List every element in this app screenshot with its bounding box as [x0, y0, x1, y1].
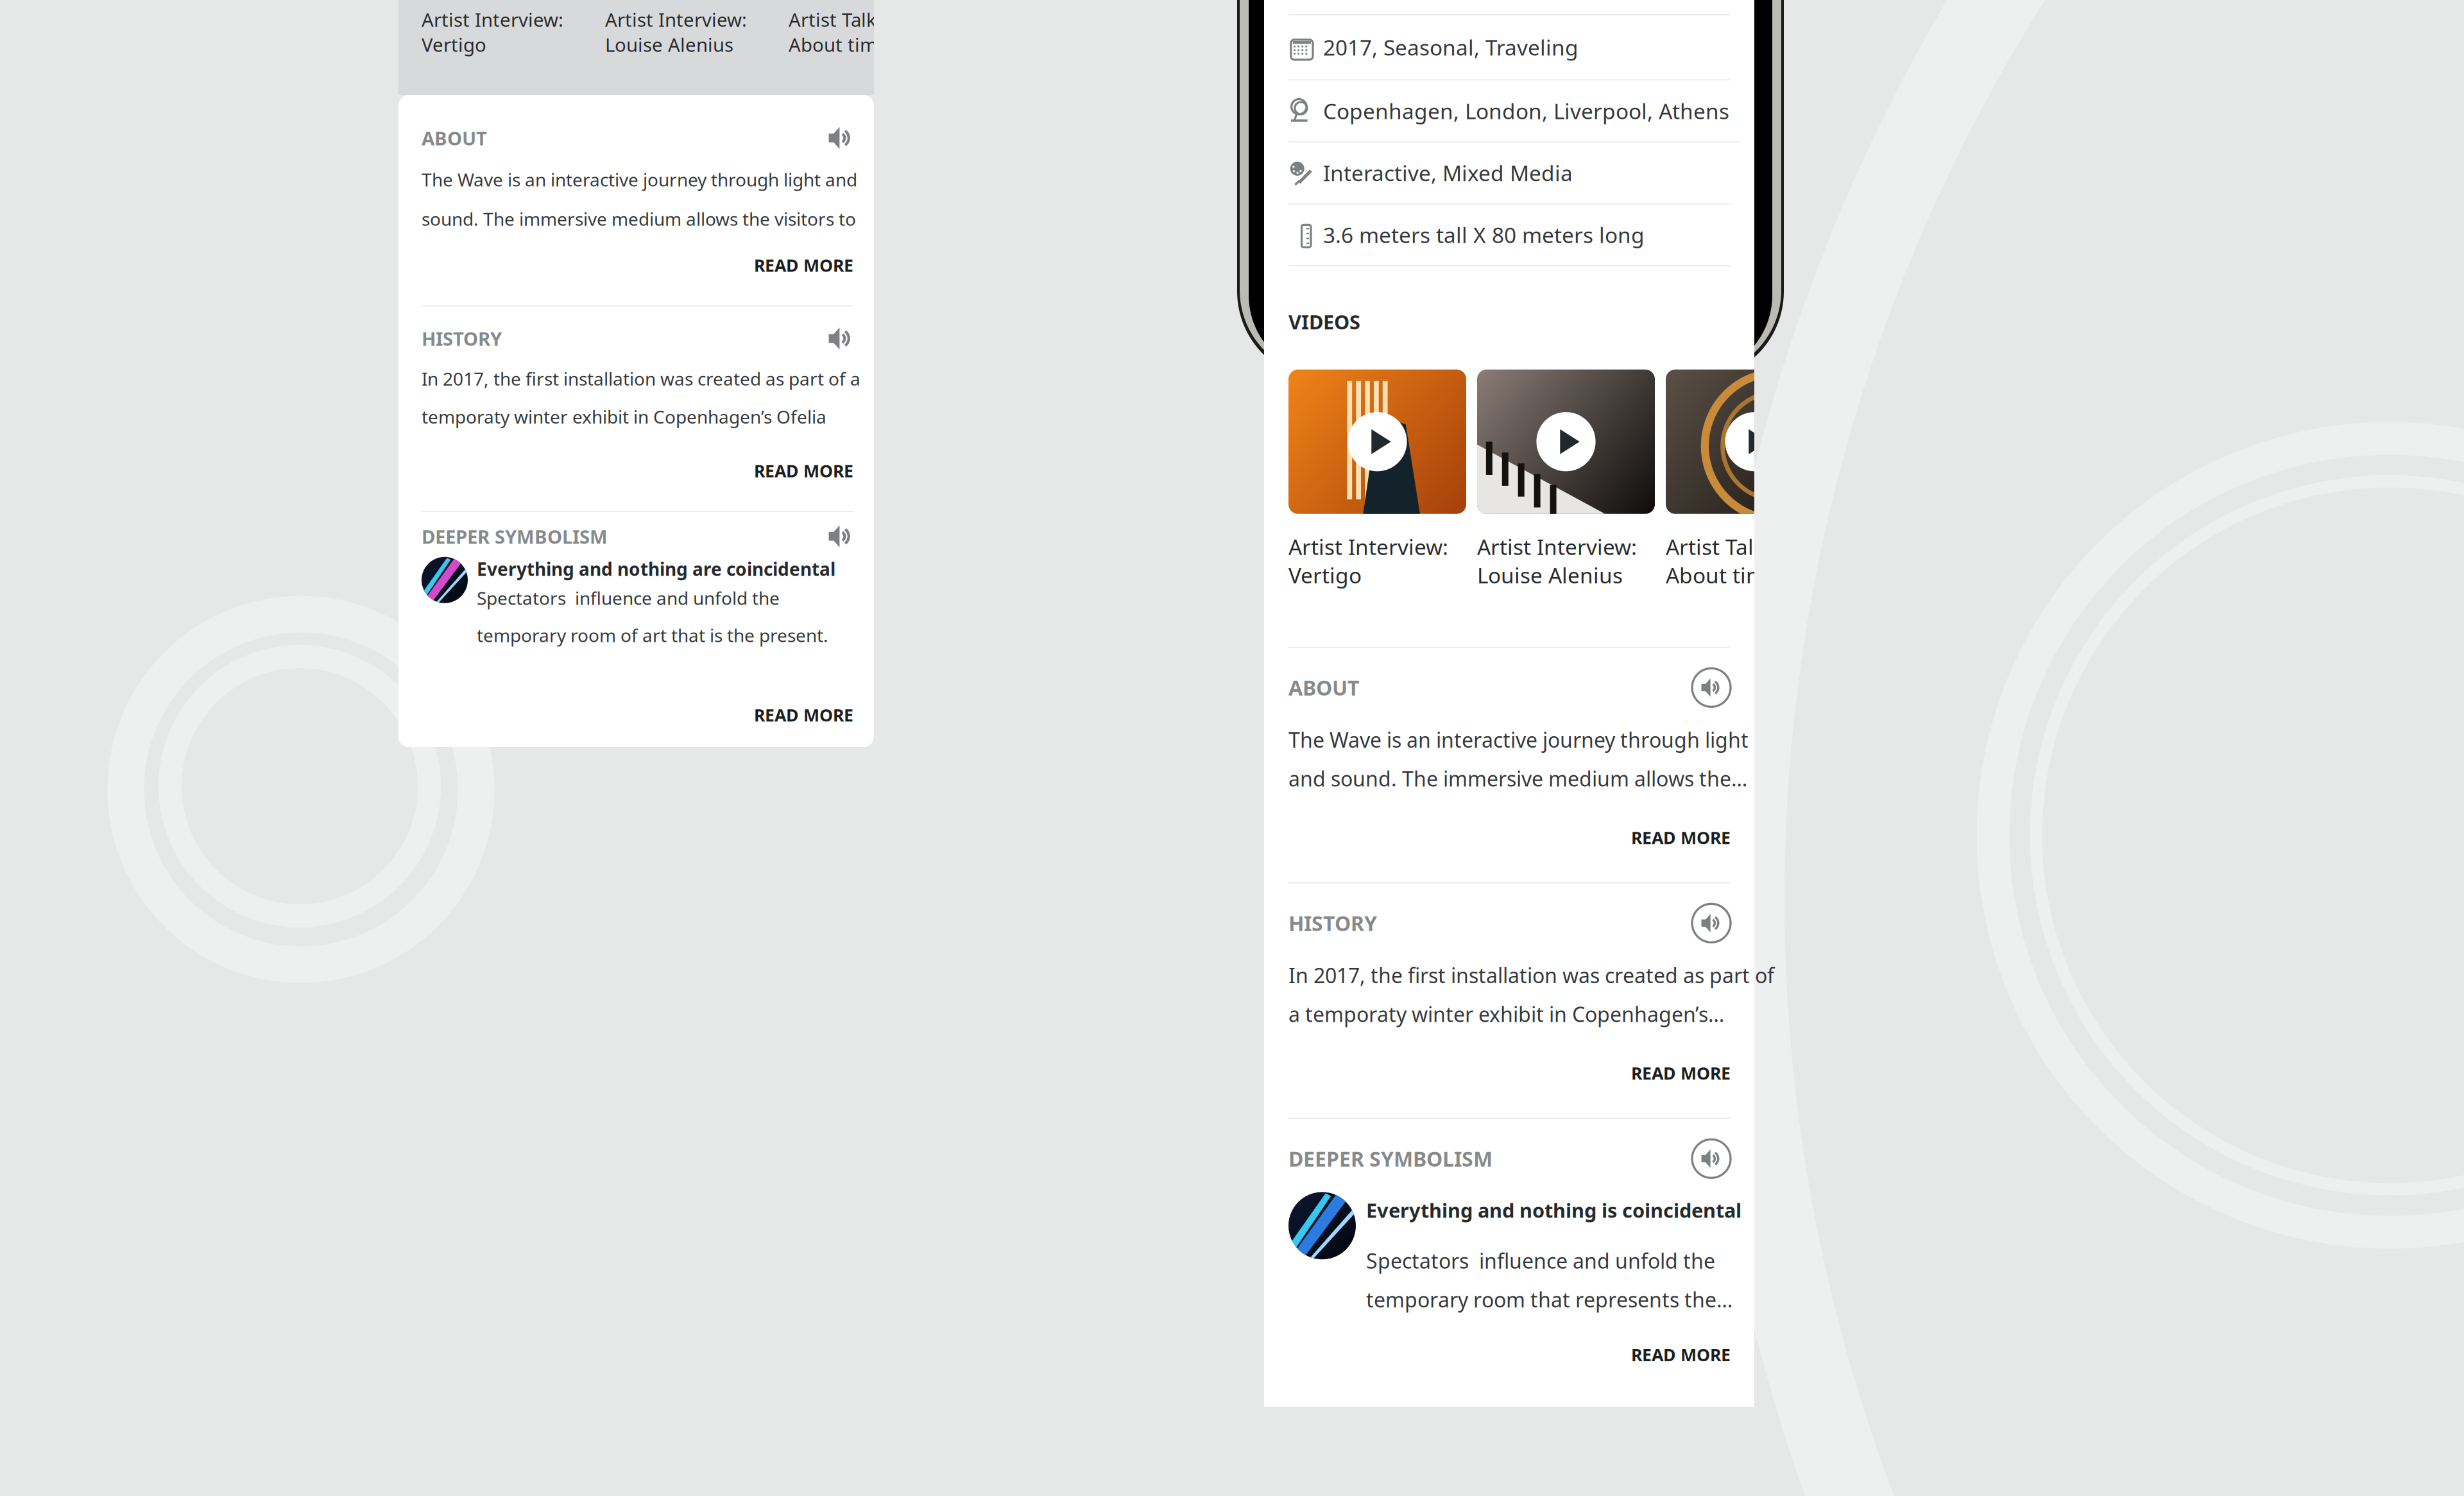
staticText: temporary room that represents the…: [1366, 1286, 1733, 1313]
staticText: temporaty winter exhibit in Copenhagen’s…: [422, 405, 826, 429]
staticText: VIDEOS: [1288, 309, 1360, 335]
staticText: Artist Interview:: [605, 7, 747, 32]
staticText: Interactive, Mixed Media: [1323, 159, 1573, 187]
button[interactable]: READ MORE: [754, 254, 853, 276]
staticText: 2017, Seasonal, Traveling: [1323, 33, 1579, 61]
staticText: HISTORY: [422, 326, 502, 351]
button[interactable]: Artist Talk: [789, 7, 949, 57]
staticText: Artist Interview:: [1288, 532, 1448, 561]
staticText: Artist Talk: [1666, 532, 1765, 561]
button[interactable]: 2017, Seasonal, Traveling: [1288, 15, 1731, 79]
staticText: HISTORY: [1288, 909, 1377, 937]
staticText: DEEPER SYMBOLISM: [422, 524, 608, 549]
staticText: Artist Talk: [789, 7, 877, 32]
staticText: READ MORE: [1631, 1343, 1731, 1366]
button[interactable]: Listen to this section: [828, 125, 853, 151]
button[interactable]: Artist Interview:: [605, 7, 766, 57]
staticText: In 2017, the first installation was crea…: [1288, 962, 1774, 989]
staticText: Copenhagen, London, Liverpool, Athens: [1323, 97, 1729, 125]
staticText: READ MORE: [1631, 1062, 1731, 1084]
staticText: ABOUT: [422, 125, 487, 150]
button[interactable]: Artist Interview:: [1477, 369, 1655, 589]
staticText: Spectators influence and unfold the: [1366, 1247, 1715, 1274]
staticText: a temporaty winter exhibit in Copenhagen…: [1288, 1000, 1724, 1028]
staticText: Vertigo: [422, 32, 486, 57]
staticText: Vertigo: [1288, 561, 1362, 589]
button[interactable]: Interactive, Mixed Media: [1288, 142, 1731, 203]
button[interactable]: Listen to this section: [828, 524, 853, 549]
staticText: Everything and nothing is coincidental: [1366, 1197, 1741, 1223]
staticText: About time: [1666, 561, 1778, 589]
button[interactable]: Listen to this section: [828, 326, 853, 351]
staticText: Louise Alenius: [1477, 561, 1623, 589]
staticText: Spectators influence and unfold the: [477, 586, 780, 610]
staticText: In 2017, the first installation was crea…: [422, 367, 860, 391]
staticText: Artist Interview:: [1477, 532, 1637, 561]
button[interactable]: Listen to this section: [1692, 668, 1731, 707]
staticText: Louise Alenius: [605, 32, 733, 57]
button[interactable]: Artist Interview:: [422, 7, 582, 57]
button[interactable]: Copenhagen, London, Liverpool, Athens: [1288, 80, 1740, 141]
staticText: temporary room of art that is the presen…: [477, 623, 828, 647]
staticText: The Wave is an interactive journey throu…: [1288, 726, 1749, 753]
staticText: READ MORE: [754, 704, 853, 726]
staticText: 3.6 meters tall X 80 meters long: [1323, 221, 1645, 249]
button[interactable]: READ MORE: [754, 704, 853, 726]
button[interactable]: READ MORE: [754, 459, 853, 482]
staticText: ABOUT: [1288, 674, 1359, 701]
staticText: READ MORE: [1631, 826, 1731, 849]
staticText: Artist Interview:: [422, 7, 563, 32]
staticText: About time: [789, 32, 888, 57]
staticText: DEEPER SYMBOLISM: [1288, 1145, 1493, 1172]
button[interactable]: READ MORE: [1631, 1062, 1731, 1084]
button[interactable]: Listen to this section: [1692, 904, 1731, 942]
button[interactable]: Artist Interview:: [1288, 369, 1466, 589]
button[interactable]: READ MORE: [1631, 826, 1731, 849]
staticText: Everything and nothing are coincidental: [477, 557, 835, 581]
staticText: READ MORE: [754, 254, 853, 276]
button[interactable]: Artist Talk: [1666, 369, 1844, 589]
staticText: The Wave is an interactive journey throu…: [422, 168, 857, 191]
staticText: and sound. The immersive medium allows t…: [1288, 765, 1747, 792]
staticText: READ MORE: [754, 459, 853, 482]
button[interactable]: READ MORE: [1631, 1343, 1731, 1366]
staticText: sound. The immersive medium allows the v…: [422, 207, 856, 231]
button[interactable]: 3.6 meters tall X 80 meters long: [1288, 204, 1731, 265]
button[interactable]: Listen to this section: [1692, 1139, 1731, 1178]
